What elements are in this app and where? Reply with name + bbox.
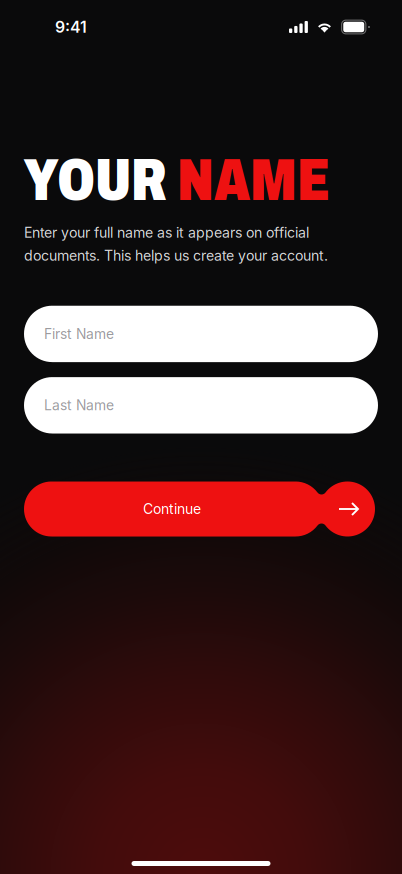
- staticText: First Name: [44, 325, 114, 342]
- button[interactable]: First Name: [24, 306, 378, 362]
- staticText: YOUR: [24, 149, 166, 212]
- staticText: documents. This helps us create your acc…: [24, 247, 328, 264]
- button[interactable]: Continue: [24, 481, 375, 536]
- staticText: Last Name: [44, 397, 114, 414]
- staticText: 9:41: [55, 17, 87, 37]
- button[interactable]: Last Name: [24, 377, 378, 433]
- staticText: NAME: [177, 149, 330, 212]
- staticText: Enter your full name as it appears on of…: [24, 224, 309, 241]
- staticText: Continue: [143, 500, 201, 517]
